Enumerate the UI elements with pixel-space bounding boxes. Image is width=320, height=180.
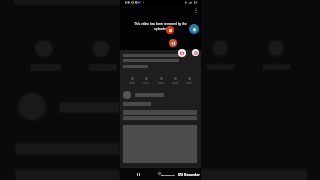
button[interactable]: Action (183, 75, 195, 85)
staticText: DU Recorder (178, 172, 200, 177)
button[interactable]: Pause recording (169, 39, 177, 47)
button[interactable]: Action (126, 75, 138, 85)
button[interactable]: Camera (178, 49, 186, 57)
button[interactable]: Action (155, 75, 167, 85)
staticText: Recorded by (161, 173, 175, 176)
button[interactable]: Recording paused (137, 173, 140, 176)
button[interactable]: Stop recording (166, 26, 174, 34)
staticText: This video has been removed by the uploa… (134, 22, 187, 31)
button[interactable]: Tools (192, 49, 199, 56)
button[interactable]: More options (195, 8, 197, 13)
button[interactable]: Action (140, 75, 152, 85)
button[interactable]: Action (169, 75, 181, 85)
button[interactable]: Home (189, 24, 199, 34)
button[interactable] (123, 90, 185, 99)
